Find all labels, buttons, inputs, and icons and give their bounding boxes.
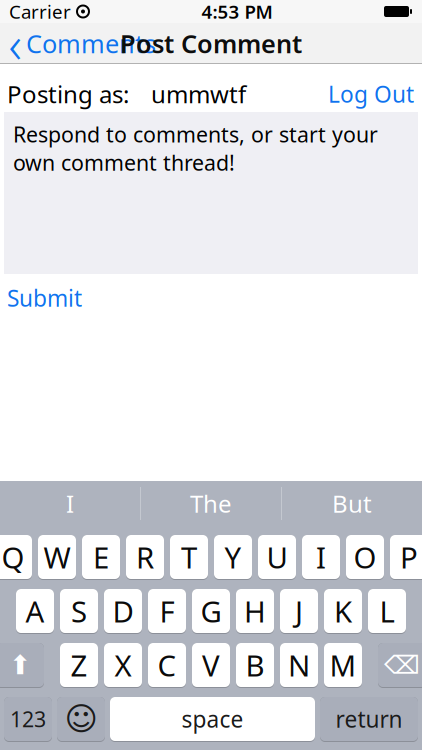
staticText: ummwtf — [151, 78, 246, 110]
button[interactable]: The — [141, 481, 281, 526]
staticText: L — [379, 591, 394, 630]
staticText: Post Comment — [120, 27, 302, 60]
staticText: J — [295, 591, 303, 630]
staticText: X — [114, 645, 131, 684]
staticText: Submit — [7, 283, 82, 313]
staticText: F — [159, 591, 174, 630]
button[interactable]: H — [236, 589, 274, 634]
button[interactable]: G — [192, 589, 230, 634]
button[interactable]: Respond to comments, or start your own c… — [4, 112, 418, 274]
button[interactable]: T — [170, 535, 208, 580]
button[interactable]: But — [282, 481, 422, 526]
staticText: return — [335, 704, 402, 734]
staticText: The — [190, 488, 232, 519]
button[interactable]: X — [104, 643, 142, 688]
staticText: T — [181, 537, 197, 576]
staticText: Q — [1, 537, 24, 576]
button[interactable]: I — [302, 535, 340, 580]
button[interactable]: J — [280, 589, 318, 634]
button[interactable]: E — [82, 535, 120, 580]
button[interactable]: W — [38, 535, 76, 580]
staticText: Posting as: — [7, 78, 129, 110]
button[interactable]: Shift — [0, 643, 44, 688]
staticText: R — [136, 537, 154, 576]
button[interactable]: V — [192, 643, 230, 688]
button[interactable]: Log Out — [316, 73, 418, 115]
button[interactable]: 123 — [4, 697, 52, 742]
button[interactable]: B — [236, 643, 274, 688]
button[interactable]: P — [390, 535, 422, 580]
staticText: A — [25, 591, 44, 630]
staticText: space — [181, 704, 243, 734]
button[interactable]: return — [320, 697, 418, 742]
staticText: Respond to comments, or start your own c… — [13, 120, 378, 177]
button[interactable]: I — [0, 481, 140, 526]
button[interactable]: N — [280, 643, 318, 688]
staticText: Log Out — [328, 79, 414, 109]
button[interactable]: K — [324, 589, 362, 634]
staticText: K — [334, 591, 352, 630]
staticText: ⌫ — [384, 651, 420, 679]
button[interactable]: D — [104, 589, 142, 634]
button[interactable]: S — [60, 589, 98, 634]
staticText: B — [245, 645, 264, 684]
staticText: But — [332, 488, 372, 519]
staticText: O — [353, 537, 376, 576]
staticText: E — [93, 537, 109, 576]
staticText: Carrier — [9, 0, 71, 24]
staticText: 123 — [10, 705, 46, 733]
staticText: ☺ — [64, 701, 97, 737]
button[interactable]: space — [110, 697, 315, 742]
staticText: ⬆ — [9, 650, 31, 680]
button[interactable]: Y — [214, 535, 252, 580]
staticText: M — [329, 645, 356, 684]
button[interactable]: Submit — [7, 274, 90, 320]
staticText: S — [71, 591, 87, 630]
staticText: W — [43, 537, 70, 576]
staticText: N — [288, 645, 310, 684]
staticText: Z — [70, 645, 87, 684]
staticText: I — [316, 537, 326, 576]
button[interactable]: C — [148, 643, 186, 688]
button[interactable]: U — [258, 535, 296, 580]
staticText: C — [157, 645, 176, 684]
staticText: I — [66, 488, 74, 519]
staticText: H — [244, 591, 266, 630]
button[interactable]: A — [16, 589, 54, 634]
button[interactable]: Emoji keyboard — [57, 697, 105, 742]
staticText: 4:53 PM — [201, 0, 272, 24]
staticText: V — [202, 645, 220, 684]
button[interactable]: O — [346, 535, 384, 580]
staticText: P — [400, 537, 418, 576]
button[interactable]: Q — [0, 535, 32, 580]
button[interactable]: Z — [60, 643, 98, 688]
staticText: G — [200, 591, 221, 630]
button[interactable]: M — [324, 643, 362, 688]
button[interactable]: F — [148, 589, 186, 634]
button[interactable]: L — [368, 589, 406, 634]
staticText: D — [112, 591, 133, 630]
staticText: U — [266, 537, 287, 576]
staticText: Comments — [26, 27, 156, 60]
staticText: ‹ — [8, 10, 21, 77]
staticText: Y — [224, 537, 241, 576]
button[interactable]: Delete — [378, 643, 422, 688]
button[interactable]: ‹ — [0, 23, 166, 64]
button[interactable]: R — [126, 535, 164, 580]
